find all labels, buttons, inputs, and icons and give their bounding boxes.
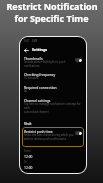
staticText: 15 minutes	[24, 76, 39, 80]
staticText: Tap here to manage notifications setting…	[24, 102, 82, 114]
staticText: Channel settings	[24, 98, 51, 102]
staticText: Required connection	[24, 85, 57, 89]
button[interactable]: Toggle	[75, 58, 82, 62]
button[interactable]: Restrict push time	[24, 129, 82, 141]
staticText: Restrict push time	[24, 129, 53, 133]
button[interactable]: Back	[22, 46, 30, 54]
button[interactable]: Thumbnails	[24, 56, 82, 68]
staticText: Select the time frame during which you w…	[24, 133, 74, 141]
staticText: Thumbnails	[24, 56, 43, 60]
staticText: Checking frequency	[24, 72, 56, 76]
button[interactable]: To	[24, 160, 54, 169]
staticText: Settings	[32, 47, 48, 52]
staticText: To	[24, 160, 27, 164]
staticText: SMS	[32, 39, 38, 43]
staticText: for Specific Time	[14, 12, 89, 24]
staticText: 12:00	[24, 165, 33, 169]
button[interactable]: Toggle	[75, 131, 82, 135]
staticText: All	[24, 89, 28, 93]
staticText: Include where flashlights is push notifi…	[24, 60, 66, 68]
button[interactable]: Required connection	[24, 85, 82, 93]
staticText: 12:00	[24, 154, 33, 158]
staticText: Visit	[24, 121, 32, 126]
staticText: From	[24, 149, 31, 153]
button[interactable]: Channel settings	[24, 98, 82, 114]
button[interactable]: Checking frequency	[24, 72, 82, 80]
staticText: 9:41	[24, 39, 30, 43]
staticText: Restrict Notification	[6, 0, 98, 12]
button[interactable]: From	[24, 149, 54, 158]
